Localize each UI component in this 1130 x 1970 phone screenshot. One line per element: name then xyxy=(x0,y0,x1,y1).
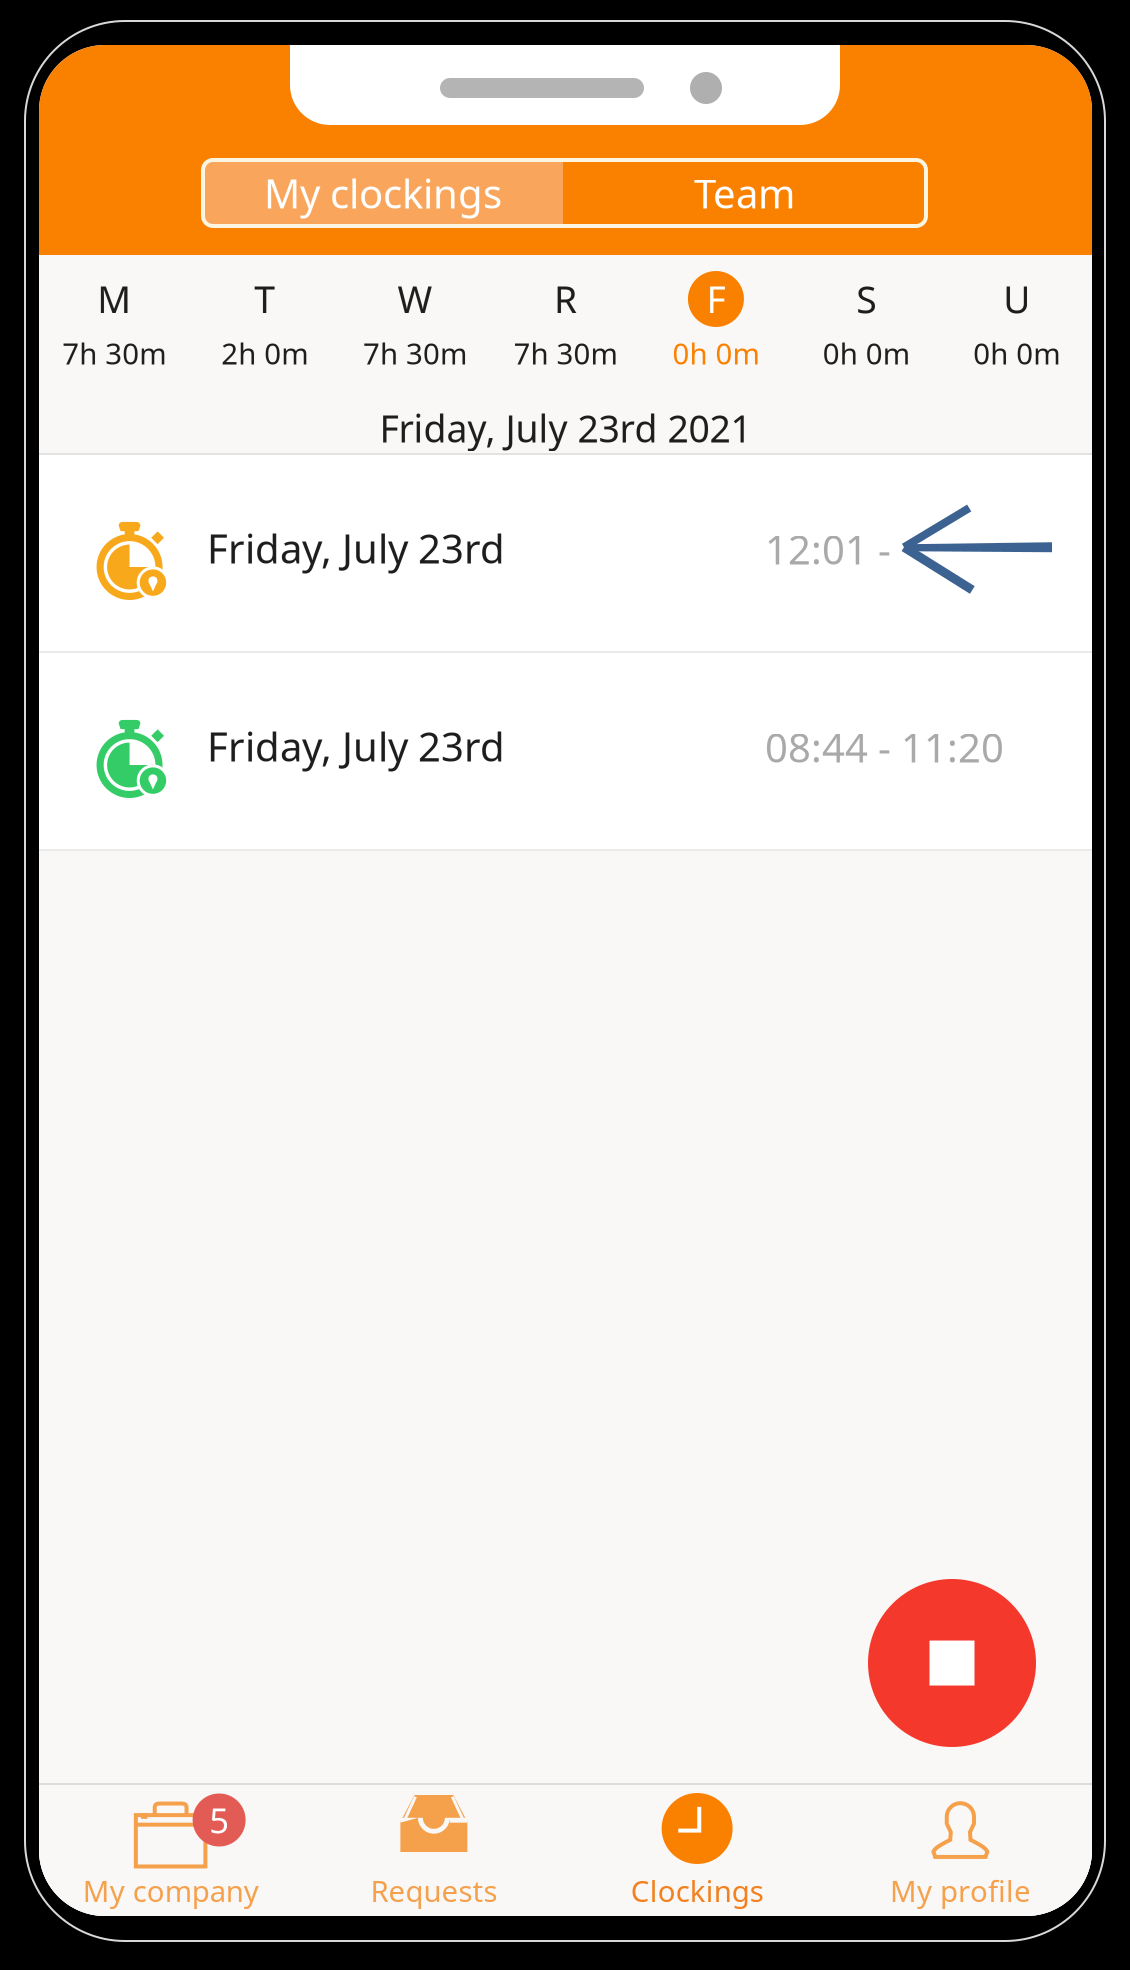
staticText: 7h 30m xyxy=(513,333,617,372)
staticText: 0h 0m xyxy=(823,333,910,372)
button[interactable]: U xyxy=(942,255,1092,401)
staticText: M xyxy=(97,274,131,324)
staticText: S xyxy=(856,274,876,324)
staticText: Team xyxy=(694,166,795,219)
staticText: Requests xyxy=(370,1871,497,1910)
staticText: Friday, July 23rd 2021 xyxy=(379,403,751,453)
staticText: Clockings xyxy=(631,1871,764,1910)
button[interactable]: Requests xyxy=(302,1785,565,1918)
staticText: R xyxy=(554,274,577,324)
button[interactable]: 5 xyxy=(39,1785,302,1918)
button[interactable]: M xyxy=(39,255,189,401)
staticText: U xyxy=(1003,274,1030,324)
staticText: My company xyxy=(83,1871,259,1910)
staticText: My profile xyxy=(890,1871,1031,1910)
staticText: W xyxy=(398,274,433,324)
button[interactable]: T xyxy=(189,255,340,401)
button[interactable]: My clockings xyxy=(203,160,563,226)
staticText: Friday, July 23rd xyxy=(207,521,505,574)
button[interactable]: Team xyxy=(563,160,926,226)
staticText: 08:44 - 11:20 xyxy=(765,720,1004,773)
staticText: 7h 30m xyxy=(363,333,467,372)
staticText: My clockings xyxy=(264,166,502,219)
button[interactable]: Friday, July 23rd xyxy=(39,455,1092,651)
button[interactable]: W xyxy=(340,255,490,401)
staticText: F xyxy=(706,274,725,324)
button[interactable]: Stop clocking xyxy=(868,1579,1036,1747)
staticText: T xyxy=(254,274,275,324)
button[interactable]: S xyxy=(791,255,941,401)
staticText: Friday, July 23rd xyxy=(207,719,505,772)
button[interactable]: F xyxy=(641,255,791,401)
staticText: 0h 0m xyxy=(973,333,1060,372)
staticText: 12:01 - xyxy=(765,522,901,575)
button[interactable]: Friday, July 23rd xyxy=(39,653,1092,849)
staticText: 7h 30m xyxy=(62,333,166,372)
button[interactable]: R xyxy=(490,255,641,401)
staticText: 0h 0m xyxy=(672,333,759,372)
staticText: 2h 0m xyxy=(221,333,308,372)
staticText: 5 xyxy=(209,1797,229,1843)
button[interactable]: Clockings xyxy=(565,1785,829,1918)
button[interactable]: My profile xyxy=(829,1785,1092,1918)
